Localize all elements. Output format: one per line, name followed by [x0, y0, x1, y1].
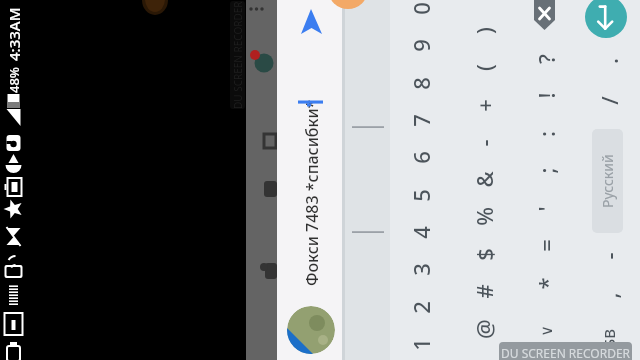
button[interactable]: ': [527, 190, 565, 228]
staticText: 7: [406, 114, 436, 127]
button[interactable]: ∨: [527, 312, 565, 350]
button[interactable]: 7: [402, 102, 440, 140]
staticText: Русский: [598, 154, 617, 208]
button[interactable]: App shortcut: [264, 130, 277, 148]
button[interactable]: .: [590, 42, 628, 80]
staticText: &: [469, 171, 499, 188]
staticText: 3: [406, 263, 436, 276]
button[interactable]: Suggestion 3: [345, 0, 390, 126]
button[interactable]: Enter: [585, 0, 627, 38]
button[interactable]: :: [527, 115, 565, 153]
staticText: :: [531, 131, 561, 137]
staticText: %: [469, 207, 499, 226]
staticText: .: [594, 58, 624, 64]
staticText: $: [469, 248, 499, 261]
button[interactable]: ;: [527, 152, 565, 190]
button[interactable]: 4: [402, 214, 440, 252]
button[interactable]: *: [527, 265, 565, 303]
staticText: ∨: [537, 325, 556, 337]
button[interactable]: 9: [402, 27, 440, 65]
button[interactable]: АБВ: [590, 325, 628, 360]
button[interactable]: ): [465, 12, 503, 50]
button[interactable]: 2: [402, 289, 440, 327]
button[interactable]: 0: [402, 0, 440, 28]
staticText: /: [594, 96, 624, 105]
button[interactable]: +: [465, 87, 503, 125]
staticText: 48%: [5, 67, 23, 93]
staticText: (: [469, 64, 499, 71]
button[interactable]: -: [465, 124, 503, 162]
staticText: ): [469, 27, 499, 34]
button[interactable]: 1: [402, 326, 440, 360]
staticText: 8: [406, 77, 436, 90]
button[interactable]: !: [527, 77, 565, 115]
button[interactable]: /: [590, 82, 628, 120]
button[interactable]: Backspace: [534, 0, 555, 30]
staticText: 6: [406, 151, 436, 164]
staticText: DU SCREEN RECORDER: [501, 345, 631, 360]
staticText: -: [469, 139, 499, 147]
button[interactable]: @: [465, 310, 503, 348]
staticText: АБВ: [599, 329, 619, 358]
staticText: DU SCREEN RECORDER: [231, 1, 245, 109]
button[interactable]: Contact: [249, 48, 277, 74]
button[interactable]: More options: [246, 0, 268, 19]
staticText: +: [469, 99, 499, 112]
staticText: 5: [406, 189, 436, 202]
button[interactable]: %: [465, 198, 503, 236]
button[interactable]: App shortcut: [264, 179, 277, 197]
staticText: #: [469, 284, 499, 299]
button[interactable]: 8: [402, 65, 440, 103]
button[interactable]: App shortcut: [264, 261, 277, 279]
staticText: ?: [531, 54, 561, 64]
button[interactable]: 5: [402, 177, 440, 215]
button[interactable]: -: [590, 237, 628, 275]
staticText: @: [469, 319, 499, 339]
button[interactable]: Send: [299, 7, 325, 35]
staticText: !: [531, 92, 561, 99]
staticText: ,: [594, 292, 624, 299]
staticText: Фокси 7483 *спасибки*: [301, 99, 323, 286]
staticText: 0: [406, 2, 436, 15]
button[interactable]: Profile picture: [287, 306, 335, 354]
staticText: 4:33AM: [4, 7, 24, 61]
staticText: *: [531, 277, 561, 290]
staticText: 9: [406, 39, 436, 52]
staticText: =: [531, 239, 561, 252]
button[interactable]: 3: [402, 251, 440, 289]
button[interactable]: #: [465, 273, 503, 311]
button[interactable]: ?: [527, 40, 565, 78]
button[interactable]: $: [465, 236, 503, 274]
staticText: -: [594, 252, 624, 260]
staticText: ': [531, 206, 561, 212]
button[interactable]: 6: [402, 139, 440, 177]
button[interactable]: =: [527, 227, 565, 265]
staticText: 1: [406, 338, 436, 351]
button[interactable]: (: [465, 49, 503, 87]
button[interactable]: &: [465, 161, 503, 199]
button[interactable]: ,: [590, 277, 628, 315]
staticText: ;: [531, 167, 561, 174]
staticText: 4: [406, 226, 436, 239]
button[interactable]: Русский: [592, 129, 623, 233]
staticText: 2: [406, 301, 436, 314]
